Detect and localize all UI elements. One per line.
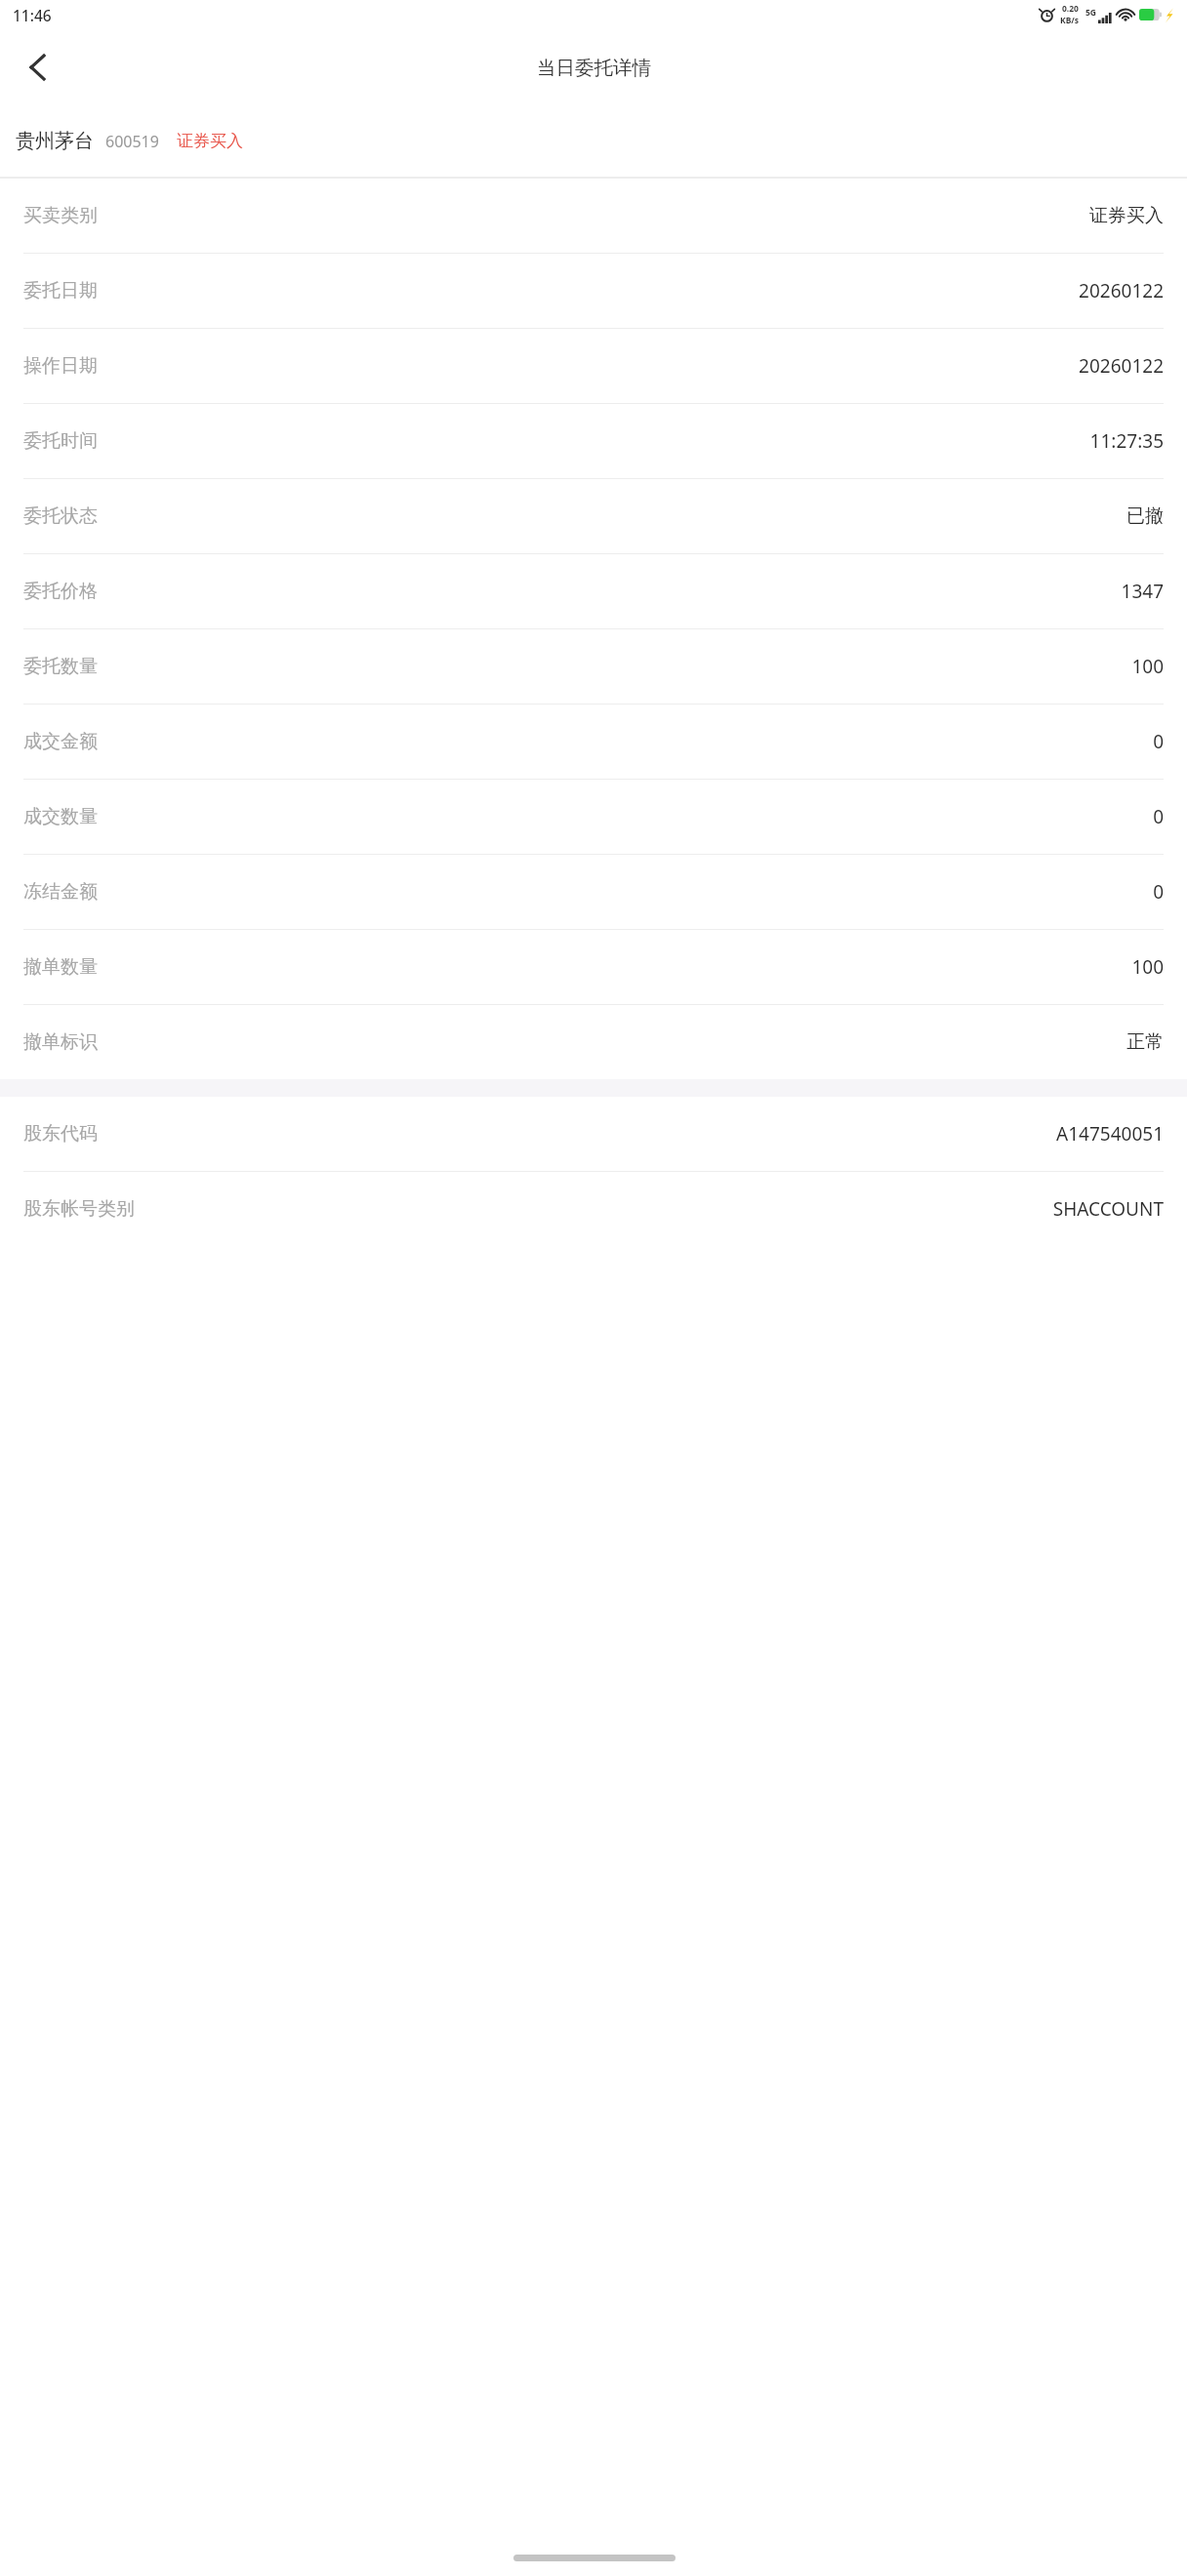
staticText: 冻结金额 <box>23 880 98 904</box>
button[interactable]: 冻结金额 <box>0 855 1187 929</box>
staticText: 操作日期 <box>23 354 98 378</box>
button[interactable]: 贵州茅台 <box>0 105 1187 177</box>
staticText: 证券买入 <box>177 131 243 151</box>
button[interactable]: 买卖类别 <box>0 179 1187 253</box>
staticText: 100 <box>1131 654 1164 679</box>
staticText: 0 <box>1153 729 1164 754</box>
staticText: 11:46 <box>13 5 52 25</box>
button[interactable]: 成交金额 <box>0 704 1187 779</box>
button[interactable]: 操作日期 <box>0 329 1187 403</box>
staticText: 已撤 <box>1126 504 1164 528</box>
staticText: 0 <box>1153 804 1164 829</box>
staticText: 证券买入 <box>1089 204 1164 227</box>
button[interactable]: 委托状态 <box>0 479 1187 553</box>
button[interactable]: 股东帐号类别 <box>0 1172 1187 1246</box>
staticText: 委托时间 <box>23 429 98 453</box>
staticText: 委托日期 <box>23 279 98 302</box>
staticText: 买卖类别 <box>23 204 98 227</box>
button[interactable]: 委托日期 <box>0 254 1187 328</box>
button[interactable]: 股东代码 <box>0 1097 1187 1171</box>
staticText: 撤单数量 <box>23 955 98 979</box>
button[interactable]: 成交数量 <box>0 780 1187 854</box>
staticText: 100 <box>1131 954 1164 980</box>
staticText: 20260122 <box>1079 353 1164 379</box>
staticText: 5G <box>1085 7 1097 19</box>
staticText: SHACCOUNT <box>1052 1196 1164 1222</box>
staticText: 1347 <box>1121 579 1164 604</box>
staticText: 撤单标识 <box>23 1030 98 1054</box>
button[interactable]: Back <box>10 40 64 95</box>
button[interactable]: 委托价格 <box>0 554 1187 628</box>
staticText: 0.20 <box>1062 3 1079 15</box>
staticText: KB/s <box>1060 15 1080 26</box>
staticText: A147540051 <box>1056 1121 1164 1147</box>
staticText: 股东代码 <box>23 1122 98 1146</box>
staticText: 11:27:35 <box>1089 428 1164 454</box>
staticText: 成交数量 <box>23 805 98 828</box>
staticText: 贵州茅台 <box>16 129 94 153</box>
button[interactable]: 撤单标识 <box>0 1005 1187 1079</box>
staticText: 600519 <box>105 131 159 152</box>
button[interactable]: 委托数量 <box>0 629 1187 704</box>
staticText: 正常 <box>1126 1030 1164 1054</box>
staticText: 委托数量 <box>23 655 98 678</box>
staticText: 委托价格 <box>23 580 98 603</box>
staticText: 当日委托详情 <box>537 56 651 80</box>
button[interactable]: 委托时间 <box>0 404 1187 478</box>
staticText: 20260122 <box>1079 278 1164 303</box>
button[interactable]: 撤单数量 <box>0 930 1187 1004</box>
staticText: 成交金额 <box>23 730 98 753</box>
staticText: 0 <box>1153 879 1164 905</box>
staticText: 委托状态 <box>23 504 98 528</box>
staticText: 股东帐号类别 <box>23 1197 135 1221</box>
